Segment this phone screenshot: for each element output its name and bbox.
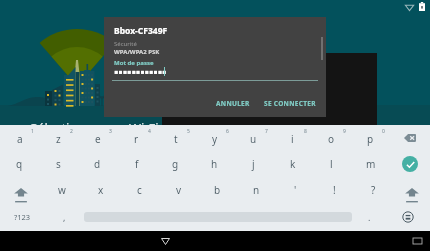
staticText: SE CONNECTER (264, 99, 316, 108)
staticText: 9 (343, 128, 346, 135)
staticText: 2 (70, 128, 73, 135)
staticText: ANNULER (216, 99, 250, 108)
button[interactable]: ' (276, 177, 315, 203)
staticText: Bbox-CF349F (114, 25, 168, 37)
button[interactable]: ? (354, 177, 393, 203)
staticText: h (211, 157, 218, 171)
staticText: y (212, 132, 218, 146)
staticText: ! (333, 183, 336, 197)
staticText: z (56, 132, 61, 146)
button[interactable]: l (312, 151, 351, 177)
button[interactable]: k (273, 151, 312, 177)
button[interactable]: , (44, 203, 84, 231)
staticText: v (176, 183, 182, 197)
staticText: ' (294, 183, 297, 197)
staticText: ? (371, 183, 376, 197)
button[interactable]: f (117, 151, 156, 177)
button[interactable]: v (159, 177, 198, 203)
staticText: Sécurité (114, 40, 137, 48)
button[interactable]: ANNULER (211, 96, 255, 111)
button[interactable]: c (120, 177, 159, 203)
staticText: d (94, 157, 101, 171)
staticText: b (214, 183, 221, 197)
staticText: t (174, 132, 178, 146)
staticText: ?123 (14, 212, 31, 222)
staticText: 6 (226, 128, 229, 135)
staticText: i (291, 132, 294, 146)
staticText: Sélectionner un Wi-Fi (30, 119, 159, 137)
button[interactable]: Shift (0, 177, 42, 203)
staticText: e (95, 132, 101, 146)
button[interactable]: Keyboard layout (410, 234, 424, 248)
staticText: w (58, 183, 66, 197)
button[interactable]: u (234, 125, 273, 151)
staticText: 3 (109, 128, 112, 135)
button[interactable]: Backspace (390, 125, 430, 151)
button[interactable]: a (0, 125, 39, 151)
staticText: 7 (265, 128, 268, 135)
staticText: r (134, 132, 139, 146)
staticText: ▪▪▪▪▪▪▪▪▪▪▪▪ (114, 68, 167, 75)
button[interactable]: p (351, 125, 390, 151)
staticText: . (368, 211, 371, 223)
button[interactable]: j (234, 151, 273, 177)
staticText: j (252, 157, 255, 171)
staticText: q (16, 157, 23, 171)
button[interactable]: e (78, 125, 117, 151)
button[interactable]: o (312, 125, 351, 151)
staticText: , (63, 211, 66, 223)
button[interactable]: Emoji (386, 203, 430, 231)
button[interactable]: z (39, 125, 78, 151)
button[interactable]: b (198, 177, 237, 203)
staticText: 8 (304, 128, 307, 135)
button[interactable]: . (352, 203, 386, 231)
staticText: 1 (31, 128, 34, 135)
button[interactable]: Shift (393, 177, 430, 203)
staticText: s (56, 157, 61, 171)
button[interactable]: t (156, 125, 195, 151)
staticText: f (135, 157, 139, 171)
button[interactable]: q (0, 151, 39, 177)
button[interactable]: i (273, 125, 312, 151)
button[interactable]: ! (315, 177, 354, 203)
staticText: a (17, 132, 23, 146)
button[interactable]: Enter (390, 151, 430, 177)
staticText: Mot de passe (114, 59, 154, 67)
button[interactable]: n (237, 177, 276, 203)
button[interactable]: ?123 (0, 203, 44, 231)
staticText: n (253, 183, 260, 197)
staticText: m (366, 157, 376, 171)
staticText: 0 (382, 128, 385, 135)
staticText: 4 (148, 128, 151, 135)
staticText: p (367, 132, 374, 146)
staticText: c (137, 183, 142, 197)
button[interactable]: Hide keyboard (155, 231, 175, 251)
button[interactable]: y (195, 125, 234, 151)
button[interactable]: r (117, 125, 156, 151)
staticText: 5 (187, 128, 190, 135)
button[interactable]: d (78, 151, 117, 177)
staticText: k (290, 157, 296, 171)
button[interactable]: x (81, 177, 120, 203)
staticText: o (328, 132, 335, 146)
button[interactable]: w (42, 177, 81, 203)
staticText: x (98, 183, 104, 197)
staticText: l (330, 157, 333, 171)
button[interactable]: Space (84, 203, 352, 231)
button[interactable]: SE CONNECTER (259, 96, 321, 111)
button[interactable]: g (156, 151, 195, 177)
button[interactable]: m (351, 151, 390, 177)
button[interactable]: h (195, 151, 234, 177)
button[interactable]: s (39, 151, 78, 177)
staticText: u (250, 132, 257, 146)
staticText: WPA/WPA2 PSK (114, 48, 160, 56)
staticText: g (172, 157, 179, 171)
